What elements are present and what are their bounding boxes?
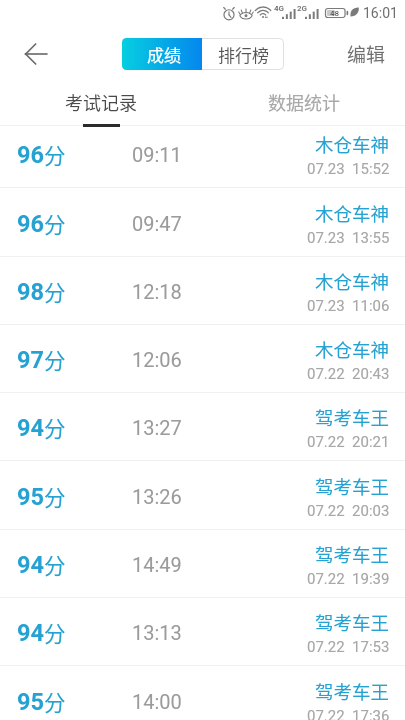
staticText: 09:47	[132, 212, 182, 235]
staticText: 驾考车王	[315, 404, 390, 431]
button[interactable]: 数据统计	[202, 84, 405, 126]
staticText: 分	[44, 208, 66, 239]
staticText: 编辑	[347, 40, 386, 68]
staticText: 07.22 20:03	[307, 502, 390, 520]
staticText: 07.23 13:55	[307, 229, 390, 247]
staticText: 94	[17, 551, 44, 579]
button[interactable]: 97	[0, 325, 405, 393]
button[interactable]: 成绩	[122, 38, 202, 70]
staticText: 14:49	[132, 553, 182, 576]
staticText: 数据统计	[268, 89, 340, 115]
staticText: 94	[17, 414, 44, 442]
staticText: 分	[44, 686, 66, 717]
button[interactable]: Back	[18, 36, 54, 72]
staticText: 96	[17, 141, 44, 169]
staticText: 98	[17, 278, 44, 306]
button[interactable]: 94	[0, 393, 405, 461]
staticText: 驾考车王	[315, 609, 390, 636]
staticText: 成绩	[147, 42, 181, 67]
staticText: 驾考车王	[315, 473, 390, 500]
staticText: 07.22 20:21	[307, 433, 390, 451]
button[interactable]: 98	[0, 257, 405, 325]
staticText: 14:00	[132, 690, 182, 713]
staticText: 07.23 15:52	[307, 160, 390, 178]
staticText: 07.22 17:53	[307, 638, 390, 656]
staticText: 97	[17, 346, 44, 374]
staticText: 09:11	[132, 143, 182, 166]
button[interactable]: 94	[0, 530, 405, 598]
staticText: 07.23 11:06	[307, 297, 390, 315]
staticText: 48	[330, 9, 340, 18]
staticText: 95	[17, 483, 44, 511]
button[interactable]: 96	[0, 189, 405, 257]
staticText: 分	[44, 276, 66, 307]
staticText: 木仓车神	[315, 200, 390, 227]
staticText: 13:13	[132, 621, 182, 644]
staticText: 12:06	[132, 348, 182, 371]
staticText: 分	[44, 617, 66, 648]
staticText: 分	[44, 139, 66, 170]
staticText: 分	[44, 412, 66, 443]
staticText: 95	[17, 688, 44, 716]
button[interactable]: 考试记录	[0, 84, 202, 126]
staticText: 13:27	[132, 416, 182, 439]
staticText: 2G	[297, 4, 308, 13]
staticText: 12:18	[132, 280, 182, 303]
button[interactable]: 94	[0, 598, 405, 666]
staticText: 木仓车神	[315, 336, 390, 363]
staticText: 排行榜	[218, 42, 269, 67]
button[interactable]: 96	[0, 126, 405, 188]
staticText: 07.22 19:39	[307, 570, 390, 588]
staticText: 考试记录	[65, 89, 137, 115]
button[interactable]: 95	[0, 667, 405, 720]
staticText: 13:26	[132, 485, 182, 508]
button[interactable]: 编辑	[339, 34, 394, 74]
staticText: 分	[44, 549, 66, 580]
staticText: 木仓车神	[315, 268, 390, 295]
staticText: 驾考车王	[315, 678, 390, 705]
staticText: 16:01	[363, 5, 398, 21]
button[interactable]: 排行榜	[202, 38, 284, 70]
staticText: 分	[44, 344, 66, 375]
staticText: 驾考车王	[315, 541, 390, 568]
staticText: 木仓车神	[315, 131, 390, 158]
button[interactable]: 95	[0, 462, 405, 530]
staticText: 4G	[274, 4, 285, 13]
staticText: 96	[17, 210, 44, 238]
staticText: 分	[44, 481, 66, 512]
staticText: 07.22 17:36	[307, 707, 390, 720]
staticText: 94	[17, 619, 44, 647]
staticText: 07.22 20:43	[307, 365, 390, 383]
